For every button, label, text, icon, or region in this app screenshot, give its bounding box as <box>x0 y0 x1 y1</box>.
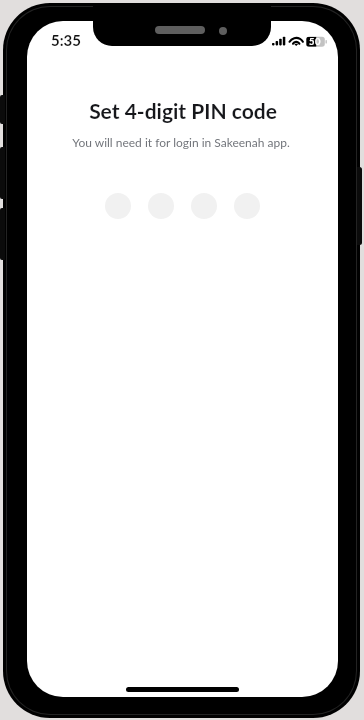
staticText: 5 <box>309 36 315 47</box>
other: Signal, Wi-Fi and battery status <box>272 36 328 48</box>
button[interactable]: PIN digit 2 <box>148 193 174 219</box>
staticText: 5:35 <box>51 31 81 49</box>
staticText: 0 <box>315 36 321 47</box>
button[interactable]: Volume down <box>0 208 5 260</box>
button[interactable]: PIN digit 4 <box>234 193 260 219</box>
button[interactable]: Power <box>357 167 362 245</box>
button[interactable]: Silent switch <box>0 95 5 124</box>
button[interactable]: Volume up <box>0 147 5 199</box>
button[interactable]: PIN digit 3 <box>191 193 217 219</box>
button[interactable]: PIN digit 1 <box>105 193 131 219</box>
staticText: You will need it for login in Sakeenah a… <box>72 135 290 149</box>
staticText: Set 4-digit PIN code <box>89 98 277 123</box>
